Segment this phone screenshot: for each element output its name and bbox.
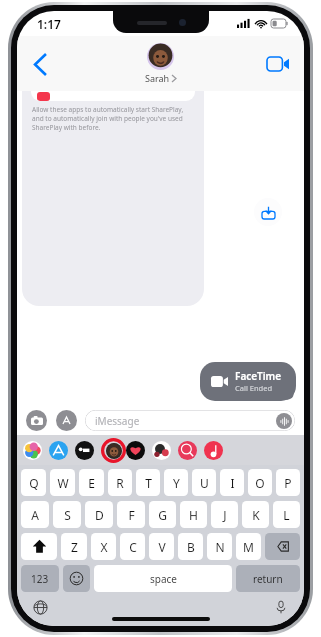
button[interactable]: E [79, 469, 104, 496]
staticText: Sarah [145, 72, 170, 84]
staticText: D [95, 507, 104, 523]
button[interactable]: S [53, 501, 81, 528]
button[interactable]: T [136, 469, 160, 496]
button[interactable]: Memoji stickers [101, 438, 126, 463]
staticText: I [230, 475, 235, 491]
staticText: E [88, 475, 95, 491]
button[interactable]: M [236, 533, 261, 560]
button[interactable]: Save [254, 198, 282, 226]
staticText: F [128, 507, 135, 523]
button[interactable]: Back [23, 47, 57, 81]
button[interactable]: W [50, 469, 75, 496]
staticText: J [223, 507, 227, 523]
button[interactable]: Q [21, 469, 46, 496]
staticText: W [57, 475, 69, 491]
button[interactable]: X [91, 533, 116, 560]
button[interactable]: FaceTime video call [262, 48, 294, 80]
staticText: space [150, 572, 177, 586]
staticText: X [100, 539, 108, 555]
staticText: Z [71, 539, 78, 555]
staticText: K [252, 507, 260, 523]
button[interactable]: Shift [21, 533, 57, 560]
button[interactable]: G [149, 501, 176, 528]
staticText: P [284, 475, 292, 491]
staticText: U [200, 475, 209, 491]
staticText: N [215, 539, 225, 555]
staticText: A [31, 507, 39, 523]
staticText: O [255, 475, 265, 491]
button[interactable]: space [94, 565, 232, 592]
staticText: Y [173, 475, 180, 491]
button[interactable]: App [204, 441, 223, 460]
staticText: FaceTime [235, 369, 282, 383]
button[interactable]: P [276, 469, 300, 496]
button[interactable]: App [152, 441, 171, 460]
staticText: G [158, 507, 167, 523]
button[interactable]: L [273, 501, 300, 528]
button[interactable]: J [211, 501, 238, 528]
button[interactable]: A [21, 501, 49, 528]
button[interactable]: App [49, 441, 68, 460]
staticText: H [189, 507, 198, 523]
button[interactable]: iMessage [85, 410, 295, 431]
button[interactable]: C [120, 533, 145, 560]
button[interactable]: B [178, 533, 203, 560]
staticText: S [64, 507, 71, 523]
button[interactable]: App [126, 441, 145, 460]
button[interactable]: Emoji [63, 565, 90, 592]
staticText: Call Ended [235, 383, 273, 393]
button[interactable]: Dictate [270, 596, 292, 618]
button[interactable]: Audio message [276, 413, 292, 429]
button[interactable]: Allow these apps to automatically start … [22, 91, 204, 306]
button[interactable]: return [236, 565, 300, 592]
button[interactable]: 123 [21, 565, 59, 592]
staticText: Q [29, 475, 39, 491]
button[interactable]: Switch keyboard [29, 596, 51, 618]
staticText: L [283, 507, 290, 523]
button[interactable]: N [207, 533, 232, 560]
staticText: R [116, 475, 124, 491]
button[interactable]: I [220, 469, 244, 496]
staticText: iMessage [95, 414, 140, 428]
button[interactable]: App [75, 441, 94, 460]
staticText: C [129, 539, 137, 555]
button[interactable]: D [85, 501, 113, 528]
button[interactable]: Z [61, 533, 87, 560]
button[interactable]: F [117, 501, 145, 528]
button[interactable]: Apps [56, 410, 77, 431]
staticText: 1:17 [37, 16, 61, 32]
staticText: T [145, 475, 152, 491]
button[interactable]: H [180, 501, 207, 528]
button[interactable]: V [149, 533, 174, 560]
staticText: V [158, 539, 166, 555]
button[interactable]: Camera [26, 410, 47, 431]
button[interactable]: App [23, 441, 42, 460]
button[interactable]: App [178, 441, 197, 460]
button[interactable]: R [108, 469, 132, 496]
button[interactable]: Y [164, 469, 188, 496]
staticText: M [243, 539, 254, 555]
staticText: Allow these apps to automatically start … [32, 105, 184, 132]
button[interactable]: U [192, 469, 216, 496]
button[interactable]: O [248, 469, 272, 496]
button[interactable]: K [242, 501, 269, 528]
button[interactable]: FaceTime [200, 362, 296, 401]
staticText: return [253, 572, 283, 586]
button[interactable]: Backspace [265, 533, 300, 560]
staticText: B [187, 539, 195, 555]
button[interactable]: Sarah [145, 43, 176, 84]
staticText: 123 [31, 572, 49, 586]
